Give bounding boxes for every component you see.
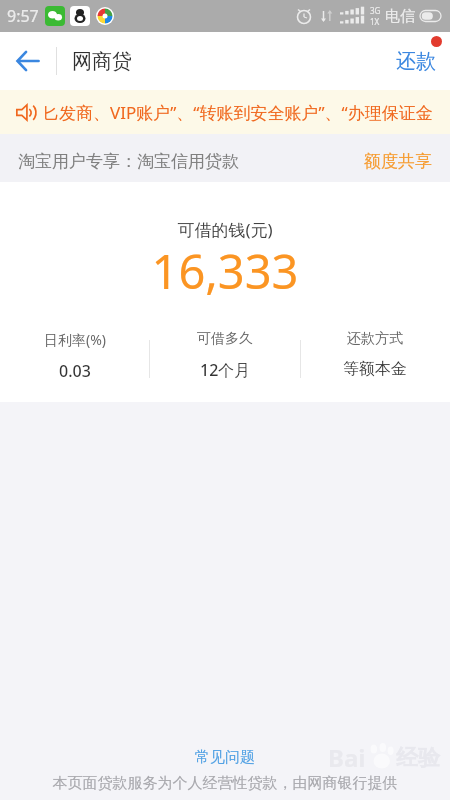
- button[interactable]: 常见问题: [191, 744, 259, 771]
- staticText: 日利率(%): [44, 330, 107, 349]
- staticText: 匕发商、VIP账户”、“转账到安全账户”、“办理保证金: [42, 101, 433, 124]
- staticText: 等额本金: [343, 359, 407, 379]
- button[interactable]: 淘宝用户专享：淘宝信用贷款: [0, 134, 450, 182]
- staticText: 还款: [396, 49, 436, 74]
- staticText: Bai: [328, 741, 366, 774]
- staticText: 可借的钱(元): [0, 218, 450, 241]
- staticText: 9:57: [7, 5, 39, 27]
- button[interactable]: [0, 32, 56, 90]
- button[interactable]: 匕发商、VIP账户”、“转账到安全账户”、“办理保证金: [0, 90, 450, 134]
- staticText: 可借多久: [197, 330, 253, 348]
- staticText: 3G: [370, 5, 381, 16]
- staticText: 常见问题: [195, 748, 255, 767]
- staticText: 网商贷: [72, 49, 132, 74]
- staticText: 还款方式: [347, 330, 403, 348]
- button[interactable]: 还款: [390, 43, 442, 80]
- staticText: 本页面贷款服务为个人经营性贷款，由网商银行提供: [0, 774, 450, 793]
- staticText: 12个月: [200, 359, 251, 381]
- staticText: 经验: [396, 744, 440, 772]
- staticText: 额度共享: [364, 151, 432, 172]
- staticText: 0.03: [59, 360, 91, 382]
- staticText: 16,333: [0, 239, 450, 303]
- staticText: 淘宝用户专享：淘宝信用贷款: [18, 151, 239, 172]
- staticText: 1X: [370, 16, 380, 27]
- staticText: 电信: [385, 7, 415, 26]
